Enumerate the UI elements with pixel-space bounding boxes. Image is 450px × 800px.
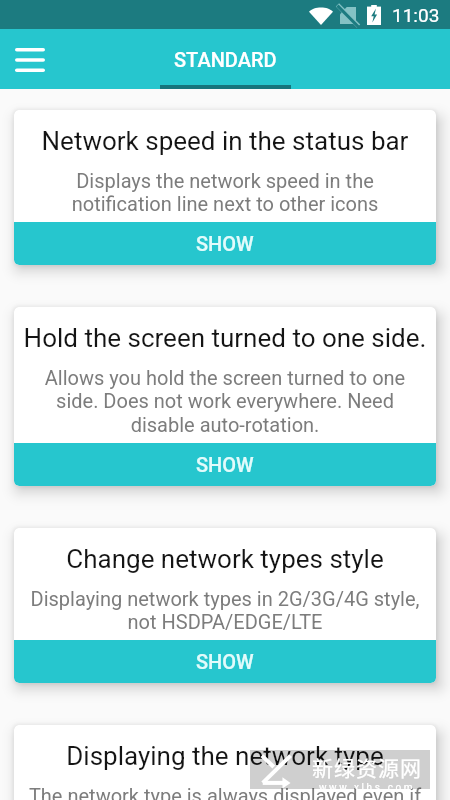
staticText: STANDARD: [174, 48, 277, 71]
staticText: Hold the screen turned to one side.: [20, 323, 430, 353]
staticText: 11:03: [392, 4, 440, 26]
staticText: The network type is always displayed eve…: [20, 784, 430, 800]
staticText: SHOW: [196, 453, 254, 476]
staticText: SHOW: [196, 232, 254, 255]
staticText: Change network types style: [20, 544, 430, 574]
staticText: SHOW: [196, 650, 254, 673]
staticText: Displays the network speed in the notifi…: [20, 169, 430, 215]
button[interactable]: Hold the screen turned to one side.: [14, 307, 436, 486]
staticText: 新绿资源网: [312, 752, 422, 782]
button[interactable]: Displaying the network type: [14, 725, 436, 800]
button[interactable]: SHOW: [14, 640, 436, 683]
staticText: Displaying network types in 2G/3G/4G sty…: [20, 587, 430, 633]
staticText: Displaying the network type: [20, 741, 430, 771]
staticText: Network speed in the status bar: [20, 126, 430, 156]
button[interactable]: SHOW: [14, 443, 436, 486]
button[interactable]: SHOW: [14, 222, 436, 265]
button[interactable]: STANDARD: [160, 29, 291, 89]
staticText: Allows you hold the screen turned to one…: [20, 366, 430, 436]
button[interactable]: Network speed in the status bar: [14, 110, 436, 265]
button[interactable]: Open navigation menu: [6, 36, 54, 84]
button[interactable]: Change network types style: [14, 528, 436, 683]
staticText: www.xlhs.com: [319, 782, 416, 789]
